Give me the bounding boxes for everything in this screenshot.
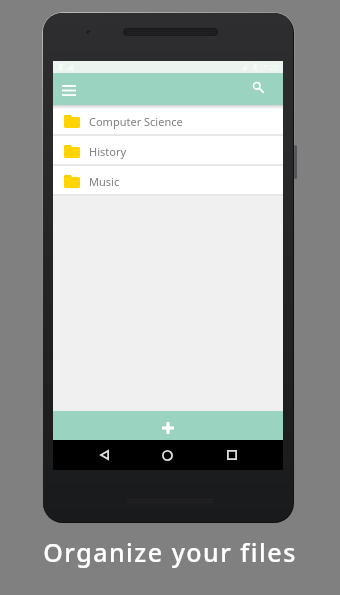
button[interactable]: Menu	[55, 75, 83, 105]
button[interactable]: History	[53, 136, 283, 164]
button[interactable]: Home	[155, 443, 179, 467]
staticText: Computer Science	[89, 114, 183, 129]
button[interactable]: Back	[92, 443, 116, 467]
staticText: Music	[89, 174, 120, 189]
button[interactable]: Computer Science	[53, 105, 283, 134]
button[interactable]: Recent apps	[220, 443, 244, 467]
staticText: Organize your files	[43, 535, 297, 569]
staticText: 7:20	[263, 62, 278, 72]
button[interactable]: Search	[246, 75, 270, 99]
button[interactable]: Add folder	[53, 411, 283, 440]
staticText: History	[89, 144, 127, 159]
button[interactable]: Music	[53, 166, 283, 194]
